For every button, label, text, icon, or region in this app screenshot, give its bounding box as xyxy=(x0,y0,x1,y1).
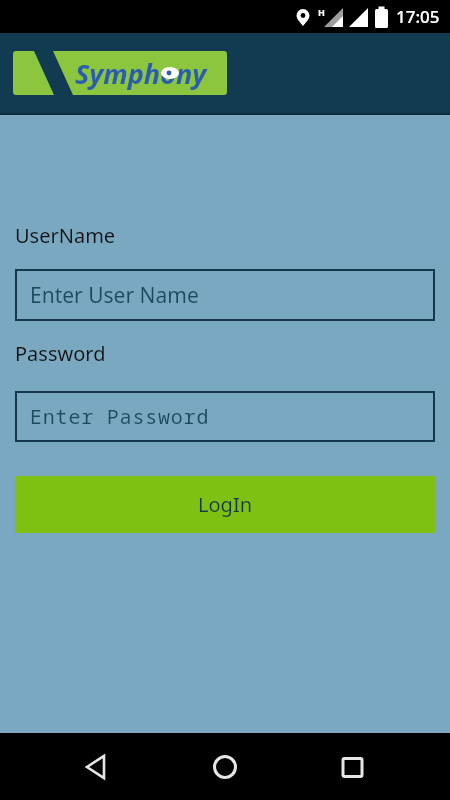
staticText: Enter Password xyxy=(30,403,210,430)
staticText: Password xyxy=(15,340,106,367)
button[interactable] xyxy=(201,743,249,791)
button[interactable]: Symphony xyxy=(13,51,227,95)
staticText: UserName xyxy=(15,222,116,249)
button[interactable] xyxy=(73,743,121,791)
button[interactable]: LogIn xyxy=(15,476,435,533)
staticText: LogIn xyxy=(198,491,253,518)
staticText: 17:05 xyxy=(396,5,440,28)
staticText: H xyxy=(318,6,325,18)
staticText: Enter User Name xyxy=(30,281,199,310)
staticText: Symphony xyxy=(75,55,207,92)
button[interactable]: Enter Password xyxy=(15,391,435,442)
button[interactable]: Enter User Name xyxy=(15,269,435,321)
button[interactable] xyxy=(328,743,376,791)
